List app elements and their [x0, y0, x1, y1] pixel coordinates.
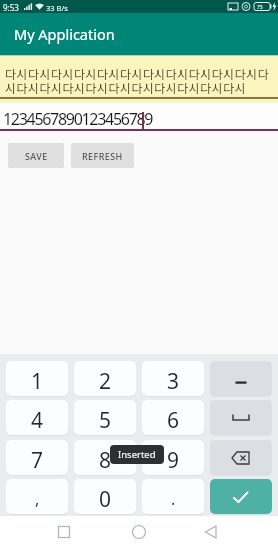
button[interactable]: [197, 518, 225, 546]
staticText: SAVE: [25, 150, 48, 162]
staticText: REFRESH: [82, 150, 123, 162]
button[interactable]: 9: [142, 440, 204, 475]
staticText: 2: [99, 367, 112, 396]
staticText: 8: [99, 446, 112, 475]
button[interactable]: .: [142, 479, 204, 514]
button[interactable]: 7: [6, 440, 68, 475]
staticText: 33 B/s: [46, 3, 68, 13]
button[interactable]: ,: [6, 479, 68, 514]
button[interactable]: 6: [142, 400, 204, 435]
button[interactable]: [210, 440, 272, 475]
staticText: 1: [31, 367, 44, 396]
button[interactable]: 1234567890123456789: [0, 103, 278, 131]
staticText: 6: [167, 406, 180, 435]
button[interactable]: [210, 400, 272, 435]
button[interactable]: 5: [74, 400, 136, 435]
button[interactable]: [125, 518, 153, 546]
button[interactable]: [210, 479, 272, 514]
button[interactable]: 다시다시다시다시다시다시다시다시다시다시다시다: [0, 56, 278, 103]
button[interactable]: 2: [74, 361, 136, 396]
staticText: 1234567890123456789: [3, 108, 153, 130]
staticText: .: [171, 488, 176, 510]
staticText: 4: [31, 406, 44, 435]
staticText: 시다시다시다시다시다시다시다시다시다시다시: [5, 79, 247, 96]
staticText: 7: [31, 446, 44, 475]
button[interactable]: SAVE: [8, 143, 64, 168]
button[interactable]: 1: [6, 361, 68, 396]
staticText: My Application: [14, 24, 115, 44]
staticText: 3: [167, 367, 180, 396]
button[interactable]: 8: [74, 440, 136, 475]
staticText: 0: [99, 485, 112, 514]
staticText: 다시다시다시다시다시다시다시다시다시다시다시다: [5, 65, 270, 82]
button[interactable]: 3: [142, 361, 204, 396]
staticText: 5: [99, 406, 112, 435]
button[interactable]: 4: [6, 400, 68, 435]
button[interactable]: [210, 361, 272, 396]
staticText: 75: [257, 4, 263, 11]
button[interactable]: 0: [74, 479, 136, 514]
staticText: 9: [167, 446, 180, 475]
button[interactable]: REFRESH: [71, 143, 134, 168]
button[interactable]: [50, 518, 78, 546]
staticText: ,: [35, 488, 40, 510]
staticText: Inserted: [118, 448, 156, 461]
staticText: 9:53: [3, 2, 19, 13]
